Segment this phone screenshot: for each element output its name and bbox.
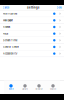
button[interactable]: Browse [32, 80, 46, 94]
staticText: Done [56, 6, 61, 9]
staticText: Cancel [2, 6, 9, 9]
staticText: Sounds [3, 25, 10, 28]
staticText: Wallpaper [3, 19, 13, 22]
staticText: Control Center [3, 45, 19, 48]
button[interactable]: Accessibility [0, 50, 64, 57]
staticText: Screen Time [3, 39, 17, 42]
staticText: Home [8, 88, 13, 90]
button[interactable]: Notifications [0, 10, 64, 17]
button[interactable]: Control Center [0, 44, 64, 50]
button[interactable]: Done [56, 6, 61, 9]
button[interactable]: Sounds [0, 24, 64, 30]
staticText: Focus [3, 32, 8, 35]
button[interactable]: Cancel [2, 6, 9, 9]
staticText: Library [22, 88, 28, 90]
staticText: Browse [35, 88, 42, 90]
staticText: Settings [27, 6, 39, 9]
staticText: Notifications [3, 12, 17, 15]
button[interactable]: Wallpaper [0, 17, 64, 24]
button[interactable]: Library [18, 80, 32, 94]
staticText: Search [50, 88, 56, 90]
button[interactable]: Screen Time [0, 37, 64, 44]
staticText: Accessibility [3, 52, 17, 55]
button[interactable]: Home [4, 80, 18, 94]
button[interactable]: Focus [0, 30, 64, 37]
button[interactable]: Search [46, 80, 60, 94]
